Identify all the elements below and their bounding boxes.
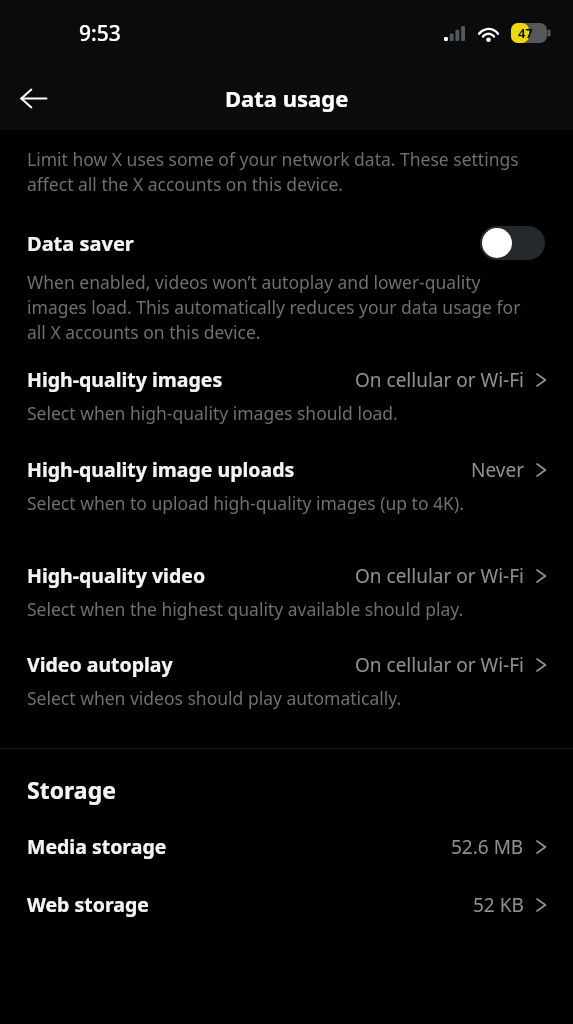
staticText: 52 KB	[473, 892, 524, 918]
staticText: Never	[471, 457, 524, 483]
staticText: Select when the highest quality availabl…	[27, 597, 464, 621]
staticText: Data saver	[27, 230, 480, 257]
button[interactable]: High-quality video	[0, 562, 573, 621]
button[interactable]: Data saver	[0, 226, 573, 344]
staticText: Select when to upload high-quality image…	[27, 491, 464, 515]
button[interactable]: High-quality images	[0, 366, 573, 425]
staticText: Data usage	[225, 83, 349, 113]
button[interactable]: Web storage	[0, 891, 573, 918]
staticText: 9:53	[79, 19, 121, 48]
staticText: On cellular or Wi-Fi	[355, 367, 524, 393]
staticText: High-quality image uploads	[27, 456, 471, 483]
button[interactable]: High-quality image uploads	[0, 456, 573, 515]
staticText: Media storage	[27, 833, 451, 860]
staticText: On cellular or Wi-Fi	[355, 563, 524, 589]
staticText: Select when videos should play automatic…	[27, 686, 402, 710]
staticText: Web storage	[27, 891, 473, 918]
staticText: 47	[518, 24, 533, 42]
staticText: On cellular or Wi-Fi	[355, 652, 524, 678]
button[interactable]: Back	[10, 75, 56, 121]
button[interactable]: Data saver toggle	[480, 226, 545, 260]
staticText: Storage	[27, 774, 116, 805]
staticText: Select when high-quality images should l…	[27, 401, 398, 425]
staticText: When enabled, videos won’t autoplay and …	[27, 270, 543, 344]
staticText: Video autoplay	[27, 651, 355, 678]
staticText: Limit how X uses some of your network da…	[27, 147, 541, 197]
staticText: 52.6 MB	[451, 834, 524, 860]
staticText: High-quality video	[27, 562, 355, 589]
staticText: High-quality images	[27, 366, 355, 393]
button[interactable]: Video autoplay	[0, 651, 573, 710]
button[interactable]: Media storage	[0, 833, 573, 860]
